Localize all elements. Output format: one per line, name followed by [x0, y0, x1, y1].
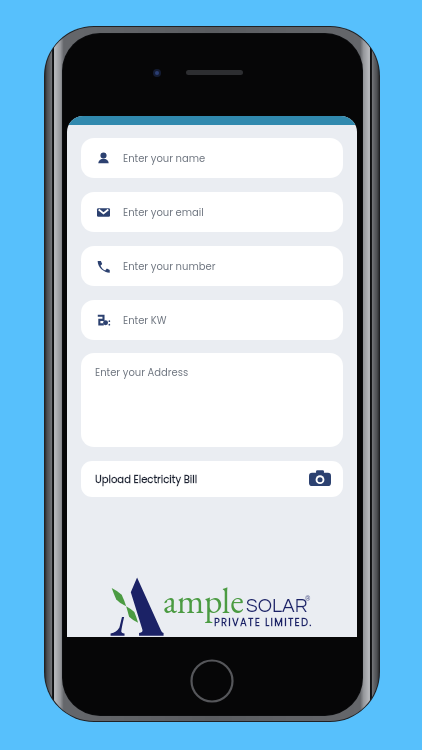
staticText: SOLAR [246, 596, 308, 616]
staticText: Enter your Address [95, 365, 189, 379]
staticText: Enter KW [123, 313, 167, 327]
staticText: ample [163, 578, 244, 624]
staticText: PRIVATE LIMITED. [214, 615, 313, 629]
button[interactable]: Enter your Address [81, 353, 343, 447]
button[interactable]: Upload photo of electricity bill [309, 468, 331, 490]
button[interactable]: Enter your email [81, 192, 343, 232]
staticText: Enter your number [123, 259, 216, 273]
staticText: Upload Electricity Bill [95, 472, 198, 486]
staticText: ® [305, 595, 311, 602]
staticText: Enter your name [123, 151, 206, 165]
staticText: Enter your email [123, 205, 204, 219]
button[interactable]: Upload Electricity Bill [81, 461, 343, 497]
button[interactable]: Enter KW [81, 300, 343, 340]
button[interactable]: Enter your name [81, 138, 343, 178]
button[interactable]: Enter your number [81, 246, 343, 286]
